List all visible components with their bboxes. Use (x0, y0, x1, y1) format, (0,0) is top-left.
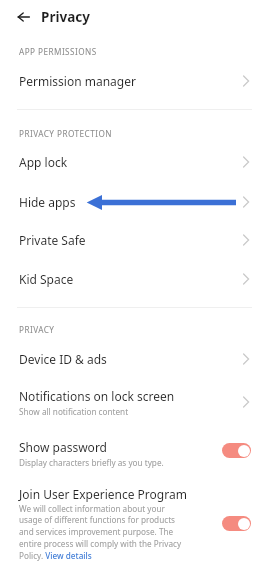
staticText: Kid Space (19, 271, 74, 287)
staticText: PRIVACY PROTECTION (19, 128, 112, 139)
staticText: Show password (19, 439, 107, 455)
staticText: PRIVACY (19, 324, 55, 335)
button[interactable]: Device ID & ads (0, 342, 269, 375)
button[interactable]: Show password toggle, on (222, 443, 251, 458)
staticText: Notifications on lock screen (19, 388, 175, 404)
button[interactable]: Join user experience program toggle, on (222, 516, 251, 531)
staticText: Privacy (41, 8, 90, 26)
button[interactable]: Back (11, 5, 35, 29)
button[interactable]: Hide apps (0, 185, 269, 218)
button[interactable]: Join User Experience Program (0, 480, 269, 562)
staticText: Hide apps (19, 194, 76, 210)
staticText: App lock (19, 154, 68, 170)
staticText: Device ID & ads (19, 351, 107, 367)
button[interactable]: App lock (0, 145, 269, 178)
button[interactable]: Notifications on lock screen (0, 381, 269, 423)
button[interactable]: Permission manager (0, 64, 269, 97)
staticText: APP PERMISSIONS (19, 46, 97, 57)
staticText: Show all notification content (19, 406, 129, 417)
staticText: Display characters briefly as you type. (19, 457, 164, 468)
staticText: Private Safe (19, 232, 86, 248)
button[interactable]: Kid Space (0, 262, 269, 295)
staticText: Permission manager (19, 73, 136, 89)
staticText: We will collect information about your u… (19, 503, 182, 562)
button[interactable]: Show password (0, 432, 269, 474)
staticText: Join User Experience Program (19, 486, 187, 502)
button[interactable]: Private Safe (0, 223, 269, 256)
